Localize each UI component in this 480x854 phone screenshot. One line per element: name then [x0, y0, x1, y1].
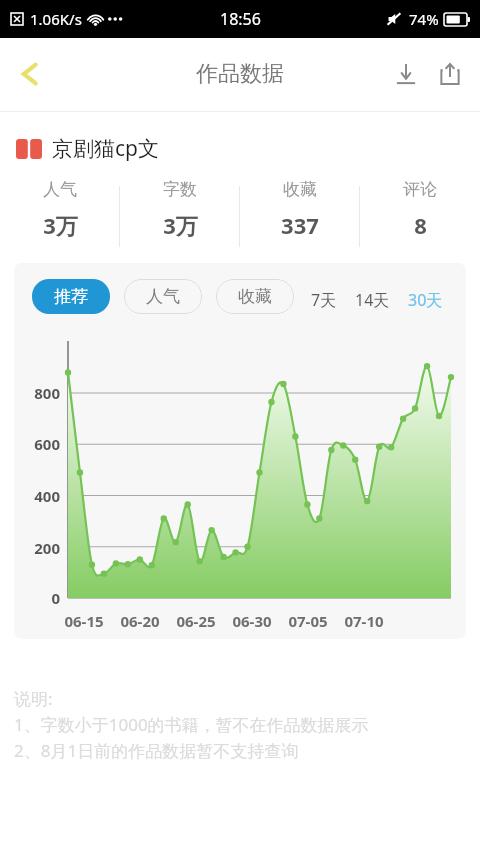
button[interactable]: 14天	[350, 289, 395, 311]
button[interactable]: 收藏	[240, 179, 360, 253]
staticText: 2、8月1日前的作品数据暂不支持查询	[14, 739, 299, 762]
staticText: 人气	[146, 286, 180, 307]
staticText: 337	[281, 210, 319, 240]
button[interactable]: 评论	[360, 179, 480, 253]
staticText: 0	[14, 588, 60, 608]
staticText: 200	[14, 538, 60, 558]
button[interactable]: 人气	[124, 279, 202, 314]
staticText: 收藏	[283, 179, 317, 200]
staticText: 1、字数小于1000的书籍，暂不在作品数据展示	[14, 713, 369, 736]
staticText: 06-15	[54, 611, 114, 631]
staticText: 800	[14, 383, 60, 403]
staticText: 字数	[163, 179, 197, 200]
staticText: 收藏	[238, 286, 272, 307]
button[interactable]: 人气	[0, 179, 120, 253]
button[interactable]: Back	[6, 50, 54, 98]
staticText: 30天	[408, 289, 443, 311]
staticText: 07-10	[334, 611, 394, 631]
button[interactable]: 推荐	[32, 279, 110, 314]
staticText: 评论	[403, 179, 437, 200]
staticText: 600	[14, 434, 60, 454]
staticText: 400	[14, 486, 60, 506]
staticText: 8	[414, 210, 427, 240]
button[interactable]: 字数	[120, 179, 240, 253]
staticText: 1.06K/s	[30, 9, 82, 29]
staticText: 06-30	[222, 611, 282, 631]
staticText: 作品数据	[196, 60, 284, 88]
staticText: 人气	[43, 179, 77, 200]
staticText: 14天	[355, 289, 390, 311]
staticText: 07-05	[278, 611, 338, 631]
staticText: 3万	[163, 210, 198, 240]
staticText: 说明:	[14, 687, 53, 710]
staticText: 推荐	[54, 286, 88, 307]
button[interactable]: Share	[428, 52, 472, 96]
staticText: 74%	[409, 9, 439, 29]
button[interactable]: 30天	[403, 289, 448, 311]
button[interactable]: Download	[384, 52, 428, 96]
staticText: 06-20	[110, 611, 170, 631]
button[interactable]: 收藏	[216, 279, 294, 314]
staticText: 京剧猫cp文	[52, 134, 159, 163]
button[interactable]: 7天	[306, 289, 342, 311]
staticText: 06-25	[166, 611, 226, 631]
staticText: 18:56	[220, 8, 261, 30]
staticText: 7天	[311, 289, 337, 311]
staticText: 3万	[43, 210, 78, 240]
